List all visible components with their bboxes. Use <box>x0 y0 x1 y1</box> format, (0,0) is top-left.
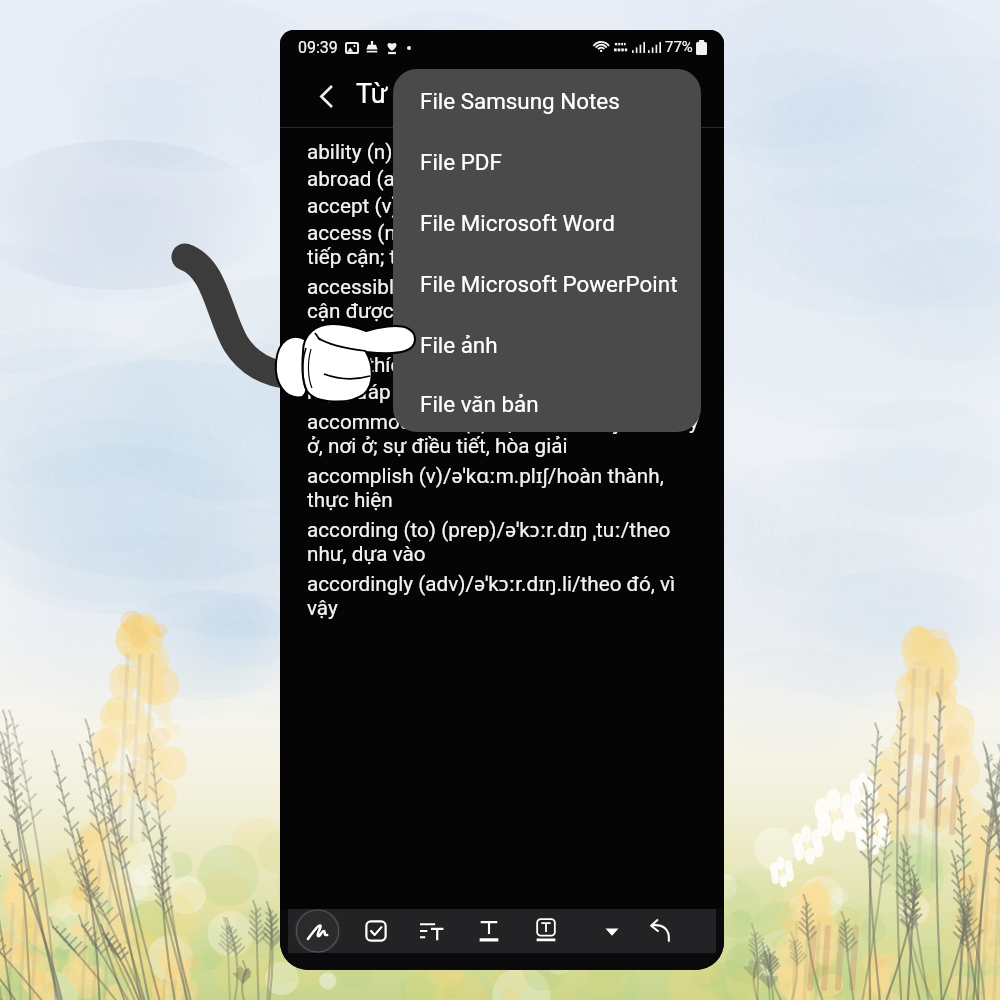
staticText: File Samsung Notes <box>420 88 620 114</box>
staticText: accommodation (n)/əˌkɑː.məˈdeɪ.ʃən/chỗ y <box>307 407 699 434</box>
button[interactable]: Back <box>299 69 353 123</box>
button[interactable]: Pen <box>294 909 341 953</box>
staticText: accessible (adj)/əkˈses.ə.bəl/có thể tiế… <box>307 272 673 299</box>
button[interactable]: File ảnh <box>393 314 701 375</box>
button[interactable]: File Microsoft Word <box>393 192 701 253</box>
button[interactable]: Checkbox <box>356 911 396 951</box>
staticText: 09:39 <box>298 38 338 57</box>
button[interactable]: Paragraph style <box>412 911 452 951</box>
staticText: File Microsoft PowerPoint <box>420 271 678 297</box>
button[interactable]: File Samsung Notes <box>393 70 701 131</box>
staticText: thực hiện <box>307 488 393 512</box>
staticText: File văn bản <box>420 391 539 417</box>
staticText: vậy <box>307 596 338 620</box>
staticText: Từ <box>356 78 388 110</box>
button[interactable]: More <box>592 911 632 951</box>
staticText: File ảnh <box>420 332 498 358</box>
staticText: ở, nơi ở; sự điều tiết, hòa giải <box>307 434 568 458</box>
staticText: hiện; đáp ứng nhu cầu <box>307 380 510 404</box>
staticText: chỗ ở, thích nghi; điều tiết, thực <box>307 353 593 377</box>
staticText: ability (n)./əˈbɪl.ə.ti/khả năng <box>307 137 570 164</box>
staticText: according (to) (prep)/əˈkɔːr.dɪŋ ˌtuː/th… <box>307 515 671 542</box>
button[interactable]: File Microsoft PowerPoint <box>393 253 701 314</box>
staticText: accomplish (v)/əˈkɑːm.plɪʃ/hoàn thành, <box>307 461 664 488</box>
staticText: accept (v)/əkˈsept/chấp nhận, đồng ý <box>307 191 648 218</box>
staticText: File Microsoft Word <box>420 210 615 236</box>
button[interactable]: Text box <box>526 911 566 951</box>
staticText: File PDF <box>420 149 502 175</box>
staticText: 77% <box>665 38 693 56</box>
button[interactable]: File PDF <box>393 131 701 192</box>
button[interactable]: Undo <box>640 911 680 951</box>
button[interactable]: Text style <box>469 911 509 951</box>
staticText: cận được, dễ tiếp cận <box>307 299 504 323</box>
staticText: như, dựa vào <box>307 542 426 566</box>
staticText: accommodate (v)/əˈkɑː.mə.deɪt/cung cấp <box>307 326 692 353</box>
staticText: tiếp cận; truy cập <box>307 245 464 269</box>
staticText: accordingly (adv)/əˈkɔːr.dɪŋ.li/theo đó,… <box>307 569 676 596</box>
button[interactable]: File văn bản <box>393 375 701 432</box>
staticText: abroad (adv)/əˈbrɔːd/ở, ra nước ngoài <box>307 164 650 191</box>
staticText: access (n)/ˈæk.ses/sự tiếp cận, lối vào; <box>307 218 665 245</box>
